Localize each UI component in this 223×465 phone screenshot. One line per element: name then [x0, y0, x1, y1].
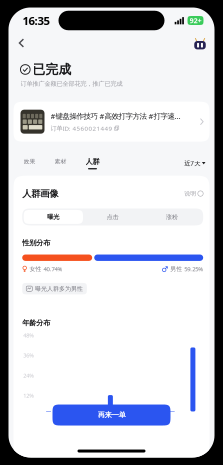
staticText: 人群: [85, 157, 99, 166]
button[interactable]: 人群: [78, 154, 106, 173]
staticText: 效果: [23, 158, 35, 165]
staticText: 点击: [107, 213, 119, 221]
staticText: 人群画像: [22, 188, 58, 199]
staticText: 48%: [23, 331, 34, 339]
button[interactable]: 效果: [16, 154, 42, 173]
staticText: 16:35: [22, 13, 49, 28]
button[interactable]: 说明: [184, 190, 203, 197]
staticText: 涨粉: [166, 213, 178, 221]
staticText: 素材: [54, 158, 66, 165]
button[interactable]: 点击: [83, 210, 142, 224]
staticText: 24%: [23, 372, 34, 379]
staticText: 年龄分布: [22, 318, 50, 327]
staticText: 36%: [23, 352, 34, 359]
staticText: #键盘操作技巧 #高效打字方法 #打字速...: [50, 111, 180, 121]
staticText: 性别分布: [22, 238, 50, 247]
button[interactable]: 涨粉: [142, 210, 202, 224]
staticText: 说明: [184, 190, 196, 197]
staticText: 订单ID: 4560021449: [50, 124, 112, 132]
staticText: 女性 40.74%: [29, 265, 62, 273]
staticText: 订单推广金额已全部花完，推广已完成: [20, 80, 122, 88]
staticText: 12%: [23, 392, 34, 399]
button[interactable]: AI assistant: [185, 35, 214, 51]
staticText: 近7天: [184, 159, 200, 167]
staticText: 再来一单: [97, 410, 125, 420]
button[interactable]: 再来一单: [52, 404, 170, 425]
staticText: 92+: [189, 15, 201, 25]
staticText: 曝光人群多为男性: [35, 285, 83, 292]
staticText: 曝光: [47, 213, 59, 221]
staticText: 男性 59.25%: [170, 265, 203, 273]
button[interactable]: #键盘操作技巧 #高效打字方法 #打字速...: [13, 102, 209, 142]
staticText: 已完成: [33, 61, 72, 77]
button[interactable]: 近7天: [184, 154, 214, 173]
button[interactable]: 曝光人群多为男性: [22, 283, 87, 294]
button[interactable]: Back: [8, 35, 32, 51]
button[interactable]: 素材: [47, 154, 73, 173]
button[interactable]: 曝光: [24, 210, 83, 224]
